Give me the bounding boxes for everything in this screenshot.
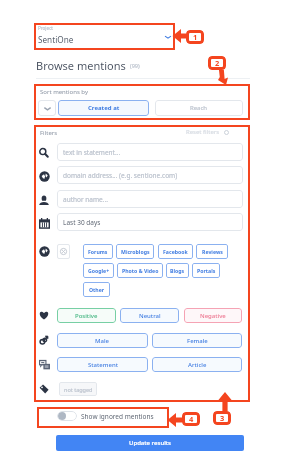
staticText: Blogs <box>170 267 185 274</box>
button[interactable]: Reach <box>155 100 243 116</box>
staticText: 2 <box>215 58 220 68</box>
staticText: Article <box>188 361 207 369</box>
staticText: Google+ <box>88 267 110 274</box>
button[interactable]: Google+ <box>83 263 114 278</box>
staticText: Statement <box>88 361 118 369</box>
staticText: Photo & Video <box>122 267 159 274</box>
staticText: Filters <box>40 129 58 137</box>
button[interactable]: not tagged <box>59 382 97 396</box>
staticText: Neutral <box>139 312 161 320</box>
staticText: (99) <box>130 62 140 69</box>
button[interactable]: Male <box>57 333 148 348</box>
button[interactable]: Blogs <box>166 263 189 278</box>
staticText: Female <box>187 337 208 345</box>
staticText: Last 30 days <box>63 218 101 227</box>
staticText: Positive <box>75 312 98 320</box>
staticText: text in statement... <box>63 148 121 157</box>
button[interactable]: Female <box>152 333 242 348</box>
staticText: 1 <box>193 32 198 42</box>
button[interactable]: Microblogs <box>116 244 154 259</box>
button[interactable]: Statement <box>57 357 148 372</box>
staticText: Created at <box>88 104 120 112</box>
staticText: Negative <box>200 312 226 320</box>
button[interactable]: Reset filters <box>186 128 229 136</box>
staticText: author name... <box>63 195 108 204</box>
button[interactable]: Facebook <box>158 244 193 259</box>
button[interactable]: Created at <box>58 100 149 116</box>
staticText: Project <box>38 25 54 31</box>
button[interactable]: Positive <box>57 308 116 323</box>
staticText: Reviews <box>202 248 223 255</box>
button[interactable]: author name... <box>57 190 243 208</box>
staticText: Portals <box>197 267 216 274</box>
staticText: Other <box>89 286 105 293</box>
staticText: Reset filters <box>186 128 220 136</box>
button[interactable]: Reviews <box>196 244 228 259</box>
staticText: Facebook <box>163 248 188 255</box>
staticText: Show ignored mentions <box>81 412 154 421</box>
button[interactable]: Show ignored mentions <box>57 411 154 421</box>
button[interactable]: Clear sources <box>57 244 70 259</box>
staticText: Update results <box>129 439 171 447</box>
staticText: Forums <box>88 248 108 255</box>
staticText: Sort mentions by <box>40 88 88 96</box>
button[interactable]: Photo & Video <box>117 263 163 278</box>
button[interactable]: Forums <box>83 244 113 259</box>
staticText: Reach <box>190 104 208 112</box>
staticText: SentiOne <box>38 34 74 45</box>
button[interactable]: Project <box>35 24 175 49</box>
button[interactable]: Other <box>83 282 110 297</box>
button[interactable]: Sort direction <box>38 100 56 116</box>
button[interactable]: Neutral <box>120 308 179 323</box>
staticText: Browse mentions <box>36 58 126 73</box>
staticText: Microblogs <box>121 248 150 255</box>
button[interactable]: text in statement... <box>57 143 243 161</box>
staticText: domain address... (e.g. sentione.com) <box>63 171 178 180</box>
button[interactable]: Portals <box>192 263 220 278</box>
button[interactable]: Negative <box>184 308 242 323</box>
button[interactable]: Article <box>152 357 242 372</box>
staticText: not tagged <box>64 386 93 393</box>
staticText: 3 <box>220 413 225 423</box>
button[interactable]: domain address... (e.g. sentione.com) <box>57 166 243 184</box>
staticText: 4 <box>189 414 194 424</box>
button[interactable]: Last 30 days <box>57 213 243 231</box>
staticText: Male <box>95 337 110 345</box>
button[interactable]: Update results <box>56 435 244 451</box>
